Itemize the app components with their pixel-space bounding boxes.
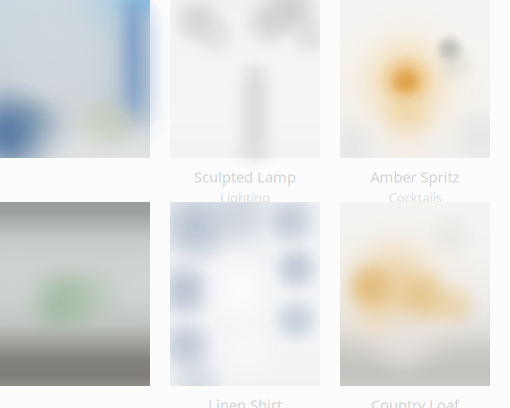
- staticText: Sculpted Lamp: [194, 167, 296, 186]
- button[interactable]: Amber Spritz: [340, 0, 490, 202]
- staticText: Lighting: [220, 188, 270, 206]
- staticText: Cocktails: [388, 188, 441, 206]
- staticText: Amber Spritz: [370, 167, 459, 186]
- button[interactable]: Sculpted Lamp: [170, 0, 320, 202]
- staticText: Linen Shirt: [208, 395, 282, 408]
- button[interactable]: [0, 202, 150, 408]
- button[interactable]: [0, 0, 150, 202]
- button[interactable]: Linen Shirt: [170, 202, 320, 408]
- button[interactable]: Country Loaf: [340, 202, 490, 408]
- staticText: Country Loaf: [371, 395, 459, 408]
